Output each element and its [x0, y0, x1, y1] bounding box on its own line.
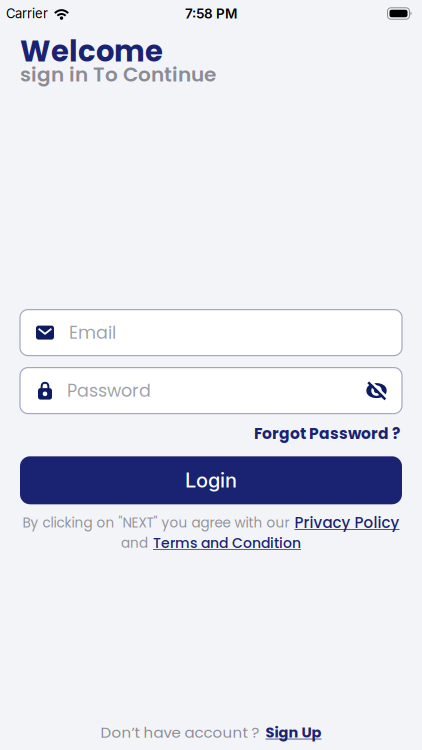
- button[interactable]: Forgot Password ?: [254, 423, 400, 444]
- staticText: and: [121, 534, 148, 553]
- button[interactable]: Privacy Policy: [294, 512, 399, 533]
- staticText: Terms and Condition: [153, 533, 301, 553]
- staticText: 7:58 PM: [185, 5, 237, 22]
- staticText: Email: [69, 320, 116, 345]
- staticText: Don’t have account ?: [100, 722, 259, 743]
- button[interactable]: Login: [20, 456, 402, 504]
- staticText: Welcome: [20, 31, 163, 72]
- button[interactable]: Terms and Condition: [153, 533, 301, 553]
- button[interactable]: Show password: [366, 382, 387, 399]
- staticText: Password: [67, 378, 151, 403]
- staticText: Carrier: [6, 6, 48, 21]
- staticText: sign in To Continue: [20, 61, 216, 89]
- button[interactable]: Password: [20, 368, 402, 414]
- staticText: Forgot Password ?: [254, 423, 400, 444]
- staticText: By clicking on "NEXT" you agree with our: [22, 513, 289, 532]
- staticText: Sign Up: [265, 722, 321, 743]
- staticText: Login: [185, 468, 237, 492]
- button[interactable]: Email: [20, 310, 402, 356]
- button[interactable]: Sign Up: [265, 722, 321, 743]
- staticText: Privacy Policy: [294, 512, 399, 533]
